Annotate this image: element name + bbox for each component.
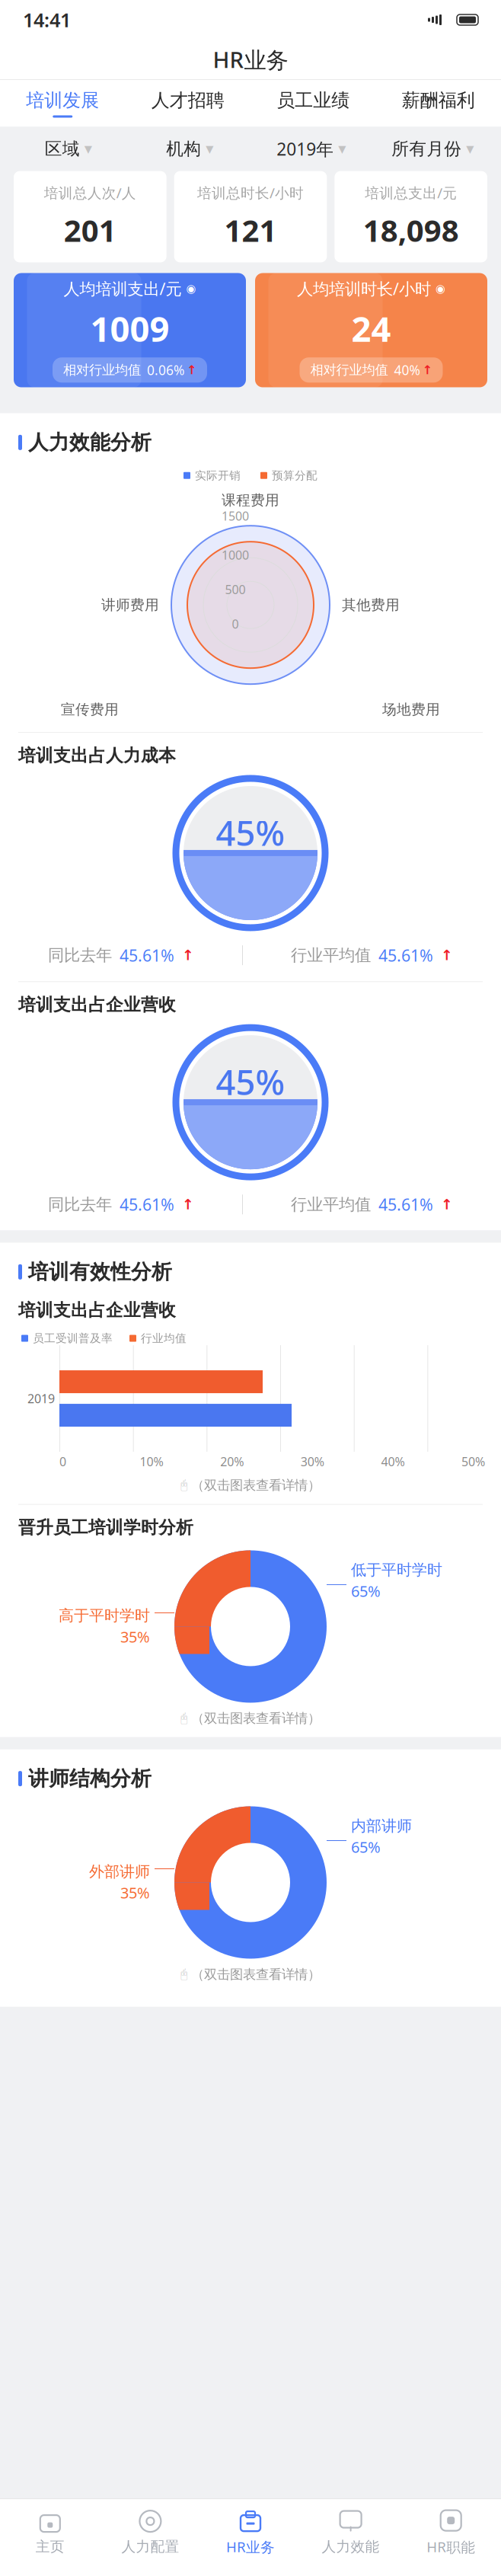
- staticText: 14:41: [23, 7, 71, 33]
- staticText: 行业平均值: [291, 1194, 371, 1214]
- staticText: ◉: [436, 282, 445, 295]
- staticText: 24: [351, 305, 391, 351]
- staticText: 40%: [394, 361, 420, 379]
- staticText: 薪酬福利: [402, 89, 475, 112]
- staticText: 🖰: [180, 1968, 188, 1980]
- staticText: 1500: [222, 508, 249, 524]
- staticText: 同比去年: [48, 945, 112, 965]
- staticText: 员工业绩: [277, 89, 350, 112]
- staticText: 晋升员工培训学时分析: [18, 1517, 193, 1538]
- staticText: 人均培训支出/元: [64, 278, 182, 299]
- staticText: 行业均值: [141, 1331, 187, 1345]
- staticText: 培训支出占人力成本: [18, 745, 176, 766]
- button[interactable]: HR职能: [401, 2499, 501, 2576]
- staticText: 人均培训时长/小时: [297, 278, 431, 299]
- staticText: 培训总支出/元: [365, 183, 457, 202]
- staticText: 45.61%: [120, 1194, 174, 1215]
- staticText: 50%: [461, 1453, 485, 1470]
- staticText: 121: [224, 210, 277, 250]
- staticText: ↑: [441, 1196, 453, 1213]
- staticText: 培训总人次/人: [44, 183, 136, 202]
- staticText: 1009: [90, 305, 169, 351]
- staticText: 2019年: [277, 137, 334, 160]
- staticText: 低于平时学时: [351, 1561, 442, 1579]
- staticText: 2019: [27, 1390, 55, 1407]
- staticText: ↑: [187, 363, 196, 377]
- staticText: 行业平均值: [291, 945, 371, 965]
- staticText: 培训支出占企业营收: [18, 994, 176, 1015]
- staticText: 45%: [216, 810, 285, 855]
- button[interactable]: 主页: [0, 2500, 100, 2575]
- staticText: ▼: [466, 143, 474, 155]
- staticText: 培训有效性分析: [28, 1259, 172, 1284]
- staticText: 人才招聘: [151, 89, 224, 112]
- staticText: 课程费用: [222, 492, 279, 509]
- staticText: 外部讲师: [89, 1862, 150, 1881]
- staticText: 10%: [140, 1453, 163, 1470]
- staticText: 机构: [166, 138, 201, 159]
- staticText: ◉: [186, 282, 196, 295]
- staticText: 培训支出占企业营收: [18, 1300, 176, 1321]
- button[interactable]: 2019年: [250, 127, 372, 171]
- staticText: 人力效能: [322, 2538, 380, 2555]
- button[interactable]: HR业务: [200, 2499, 301, 2576]
- button[interactable]: 员工业绩: [250, 80, 376, 127]
- staticText: 内部讲师: [351, 1817, 412, 1835]
- staticText: 35%: [120, 1882, 150, 1903]
- staticText: 其他费用: [342, 596, 400, 614]
- staticText: HR业务: [213, 44, 288, 74]
- staticText: 500: [225, 581, 246, 597]
- staticText: 45.61%: [378, 944, 433, 966]
- staticText: 所有月份: [392, 138, 462, 159]
- staticText: ↑: [182, 1196, 194, 1213]
- staticText: 预算分配: [272, 469, 318, 482]
- staticText: （双击图表查看详情）: [191, 1477, 321, 1493]
- staticText: ▼: [84, 143, 92, 155]
- staticText: 人力效能分析: [28, 430, 152, 455]
- staticText: 讲师结构分析: [28, 1766, 152, 1791]
- staticText: 1000: [222, 547, 249, 563]
- staticText: 20%: [220, 1453, 244, 1470]
- staticText: ▼: [206, 143, 213, 155]
- button[interactable]: 人力配置: [100, 2500, 200, 2575]
- staticText: HR职能: [427, 2537, 475, 2556]
- staticText: 65%: [351, 1581, 381, 1601]
- staticText: 人力配置: [121, 2538, 179, 2555]
- staticText: 45%: [216, 1059, 285, 1105]
- staticText: 35%: [120, 1627, 150, 1647]
- staticText: 45.61%: [378, 1194, 433, 1215]
- staticText: 30%: [301, 1453, 324, 1470]
- staticText: 实际开销: [195, 469, 241, 482]
- button[interactable]: 人均培训支出/元: [14, 273, 246, 387]
- staticText: 讲师费用: [101, 596, 159, 614]
- button[interactable]: 机构: [129, 128, 250, 170]
- staticText: （双击图表查看详情）: [191, 1966, 321, 1982]
- button[interactable]: 所有月份: [372, 128, 493, 170]
- staticText: 员工受训普及率: [33, 1331, 113, 1345]
- staticText: ▼: [338, 143, 346, 155]
- staticText: 45.61%: [120, 944, 174, 966]
- staticText: 培训总时长/小时: [197, 183, 304, 202]
- staticText: 0.06%: [147, 361, 184, 379]
- staticText: 培训发展: [26, 89, 99, 112]
- staticText: 高于平时学时: [59, 1606, 150, 1625]
- staticText: 🖰: [180, 1479, 188, 1491]
- button[interactable]: 薪酬福利: [376, 80, 501, 127]
- button[interactable]: 区域: [8, 128, 129, 170]
- staticText: 65%: [351, 1837, 381, 1857]
- button[interactable]: 培训发展: [0, 80, 125, 127]
- staticText: 主页: [36, 2538, 65, 2555]
- staticText: （双击图表查看详情）: [191, 1710, 321, 1727]
- button[interactable]: 人均培训时长/小时: [255, 273, 487, 387]
- staticText: 同比去年: [48, 1194, 112, 1214]
- staticText: HR业务: [226, 2537, 275, 2556]
- staticText: 40%: [381, 1453, 405, 1470]
- staticText: 相对行业均值: [310, 362, 388, 378]
- staticText: 相对行业均值: [63, 362, 141, 378]
- staticText: 0: [232, 616, 239, 632]
- staticText: 18,098: [363, 210, 459, 250]
- button[interactable]: 人力效能: [301, 2500, 401, 2575]
- staticText: 🖰: [180, 1712, 188, 1724]
- button[interactable]: 人才招聘: [125, 80, 250, 127]
- staticText: ↑: [441, 947, 453, 963]
